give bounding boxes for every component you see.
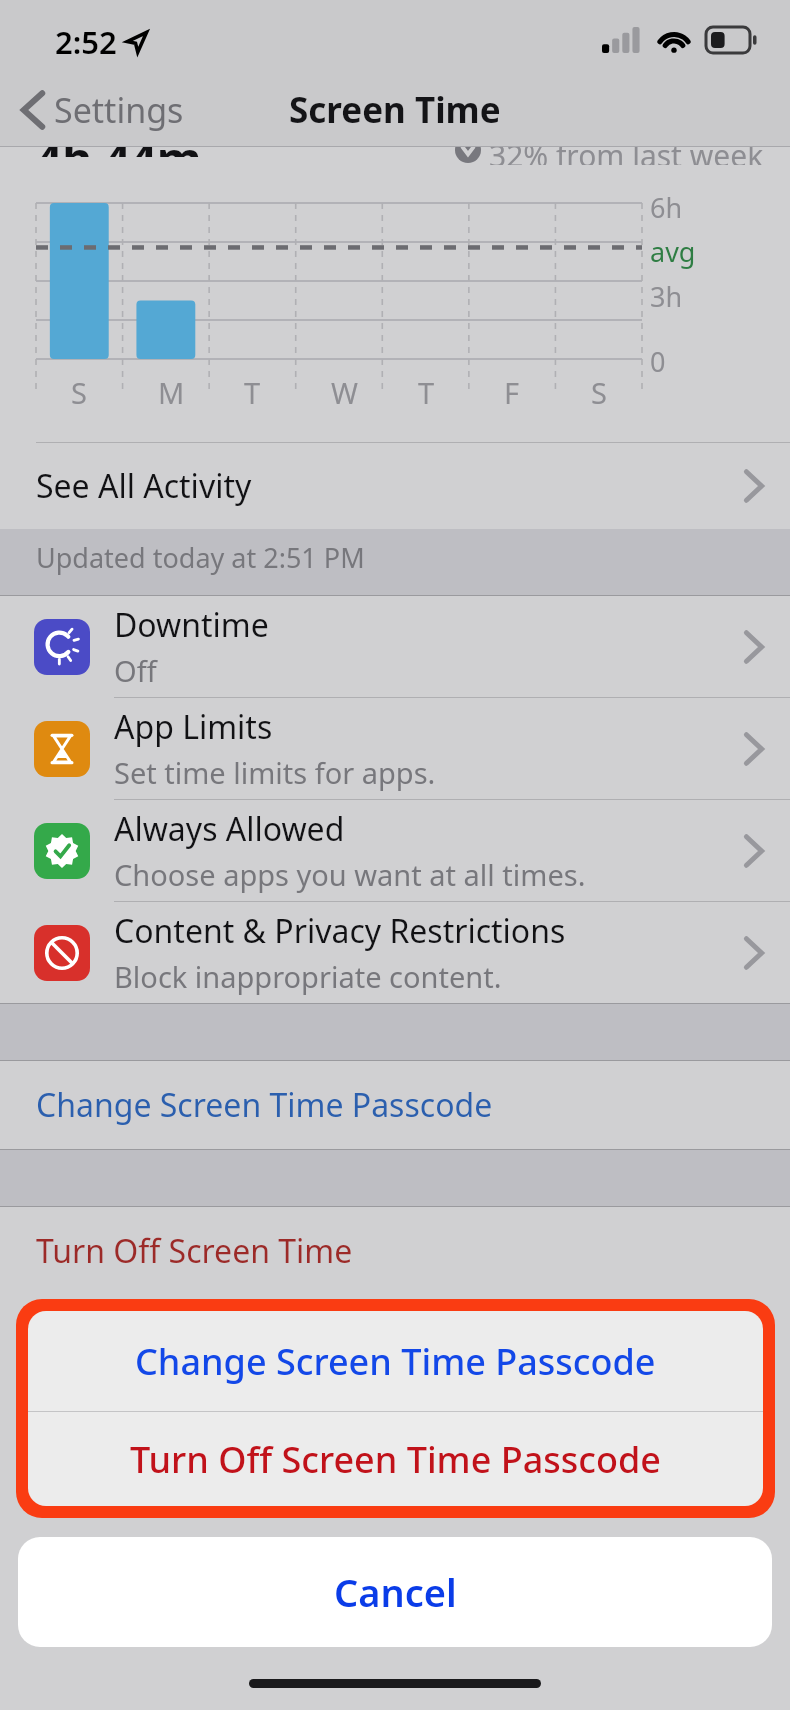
staticText: Change Screen Time Passcode <box>36 1083 493 1127</box>
button[interactable]: Always Allowed <box>0 800 790 902</box>
button[interactable]: Downtime <box>0 596 790 698</box>
staticText: 4h 44m <box>36 147 202 157</box>
button[interactable]: See All Activity <box>0 443 790 529</box>
button[interactable]: Turn Off Screen Time <box>0 1207 790 1295</box>
staticText: Screen Time <box>289 86 501 134</box>
staticText: Downtime <box>114 603 269 647</box>
button[interactable]: Change Screen Time Passcode <box>28 1311 763 1411</box>
staticText: T <box>418 373 435 412</box>
staticText: See All Activity <box>36 464 252 508</box>
staticText: T <box>244 373 261 412</box>
staticText: 2:52 <box>55 21 117 63</box>
staticText: Always Allowed <box>114 807 345 851</box>
staticText: Set time limits for apps. <box>114 753 436 792</box>
button[interactable]: Content & Privacy Restrictions <box>0 902 790 1003</box>
staticText: S <box>591 373 607 412</box>
button[interactable]: Change Screen Time Passcode <box>0 1061 790 1149</box>
staticText: Turn Off Screen Time Passcode <box>130 1435 661 1484</box>
staticText: W <box>331 373 358 412</box>
staticText: F <box>504 373 520 412</box>
button[interactable]: App Limits <box>0 698 790 800</box>
staticText: 3h <box>650 278 683 315</box>
staticText: Choose apps you want at all times. <box>114 855 586 894</box>
staticText: 0 <box>650 343 666 380</box>
staticText: S <box>71 373 87 412</box>
button[interactable]: Turn Off Screen Time Passcode <box>28 1412 763 1506</box>
staticText: Settings <box>54 87 184 133</box>
staticText: 6h <box>650 189 683 226</box>
button[interactable]: Settings <box>0 81 196 139</box>
staticText: Content & Privacy Restrictions <box>114 909 566 953</box>
staticText: Block inappropriate content. <box>114 957 502 996</box>
button[interactable]: Cancel <box>18 1537 772 1647</box>
staticText: Change Screen Time Passcode <box>135 1337 656 1386</box>
staticText: Cancel <box>334 1566 457 1618</box>
staticText: 32% from last week <box>489 147 764 165</box>
staticText: avg <box>650 233 696 270</box>
staticText: Off <box>114 651 157 690</box>
staticText: M <box>158 373 185 412</box>
staticText: App Limits <box>114 705 273 749</box>
staticText: Turn Off Screen Time <box>36 1229 353 1273</box>
staticText: Updated today at 2:51 PM <box>36 539 365 576</box>
